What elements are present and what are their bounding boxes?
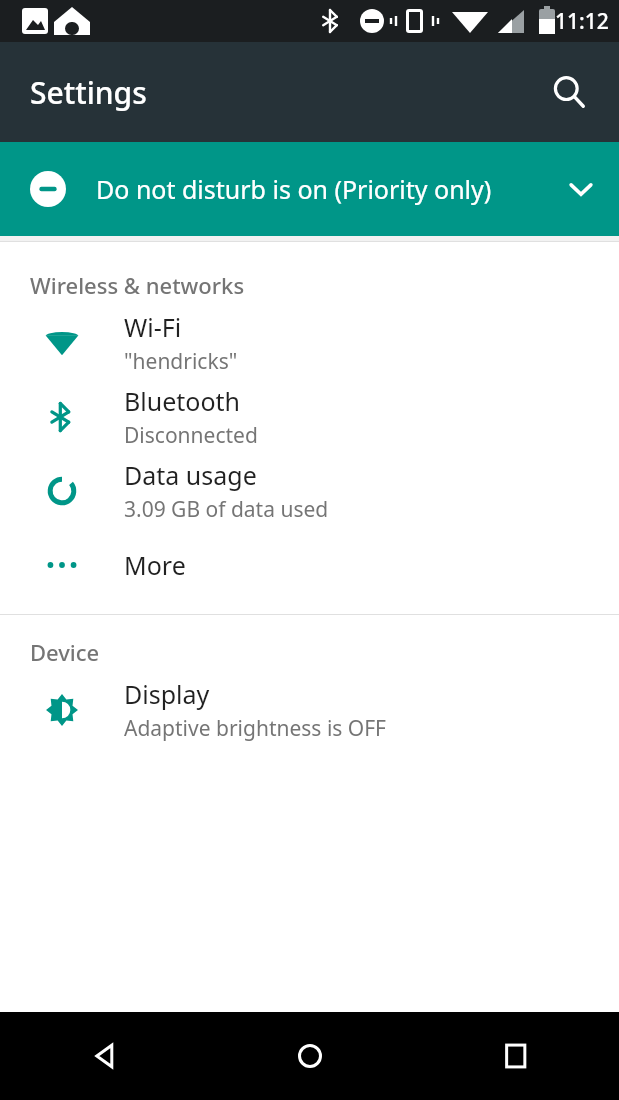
- staticText: Wireless & networks: [30, 270, 245, 300]
- staticText: Adaptive brightness is OFF: [124, 714, 387, 743]
- button[interactable]: Display: [0, 673, 619, 747]
- staticText: "hendricks": [124, 347, 238, 376]
- staticText: 3.09 GB of data used: [124, 495, 329, 524]
- staticText: Device: [30, 637, 100, 667]
- other: Expand: [543, 142, 619, 236]
- button[interactable]: Home: [207, 1012, 413, 1100]
- button[interactable]: Bluetooth: [0, 380, 619, 454]
- button[interactable]: Back: [0, 1012, 207, 1100]
- button[interactable]: Search: [543, 66, 595, 118]
- staticText: Data usage: [124, 458, 257, 492]
- staticText: 11:12: [555, 7, 609, 36]
- button[interactable]: Data usage: [0, 454, 619, 528]
- button[interactable]: Wi-Fi: [0, 306, 619, 380]
- staticText: More: [124, 548, 186, 582]
- staticText: Do not disturb is on (Priority only): [96, 172, 529, 206]
- staticText: Settings: [30, 72, 147, 113]
- button[interactable]: Recent apps: [413, 1012, 619, 1100]
- button[interactable]: Do not disturb is on (Priority only): [0, 142, 619, 236]
- button[interactable]: More: [0, 528, 619, 602]
- staticText: Display: [124, 677, 210, 711]
- staticText: Wi-Fi: [124, 310, 182, 344]
- staticText: Disconnected: [124, 421, 258, 450]
- staticText: Bluetooth: [124, 384, 241, 418]
